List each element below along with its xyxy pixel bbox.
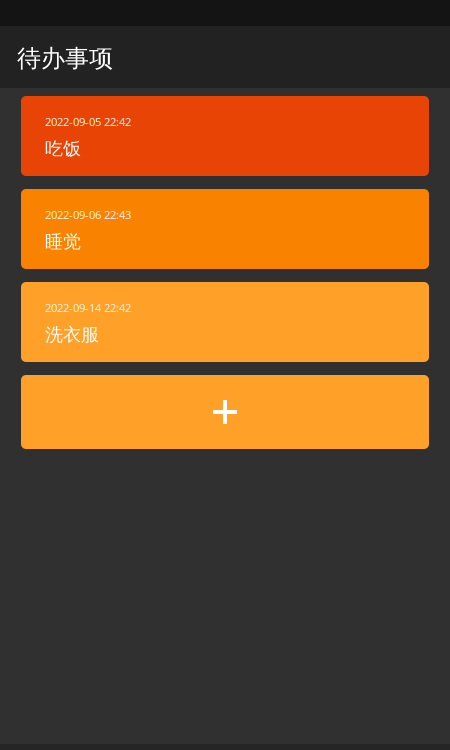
staticText: 2022-09-14 22:42	[45, 300, 131, 315]
staticText: 吃饭	[45, 137, 81, 160]
staticText: 洗衣服	[45, 323, 99, 346]
button[interactable]: 2022-09-14 22:42	[21, 282, 429, 362]
staticText: 2022-09-06 22:43	[45, 207, 131, 222]
button[interactable]: Add item	[21, 375, 429, 449]
button[interactable]: 2022-09-05 22:42	[21, 96, 429, 176]
staticText: 睡觉	[45, 230, 81, 253]
button[interactable]: 2022-09-06 22:43	[21, 189, 429, 269]
staticText: 2022-09-05 22:42	[45, 114, 131, 129]
staticText: 待办事项	[17, 43, 113, 74]
